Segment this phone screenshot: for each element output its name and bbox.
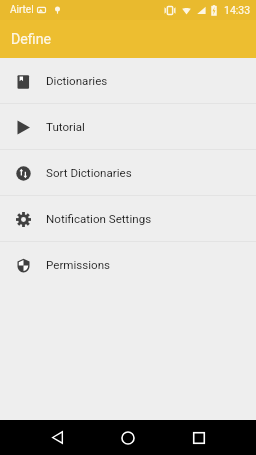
button[interactable]: Dictionaries xyxy=(0,58,256,103)
button[interactable]: Tutorial xyxy=(0,104,256,149)
button[interactable]: Sort Dictionaries xyxy=(0,150,256,195)
staticText: Notification Settings xyxy=(46,212,152,226)
staticText: Sort Dictionaries xyxy=(46,166,132,180)
button[interactable]: Notification Settings xyxy=(0,196,256,241)
staticText: Permissions xyxy=(46,258,111,272)
button[interactable]: Permissions xyxy=(0,242,256,287)
button[interactable]: Recent apps xyxy=(182,420,216,455)
staticText: 14:33 xyxy=(224,4,251,16)
staticText: Airtel xyxy=(10,4,34,16)
button[interactable]: Back xyxy=(40,420,74,455)
button[interactable]: Home xyxy=(111,420,145,455)
staticText: Tutorial xyxy=(46,120,85,134)
staticText: Define xyxy=(11,31,52,48)
staticText: Dictionaries xyxy=(46,74,108,88)
